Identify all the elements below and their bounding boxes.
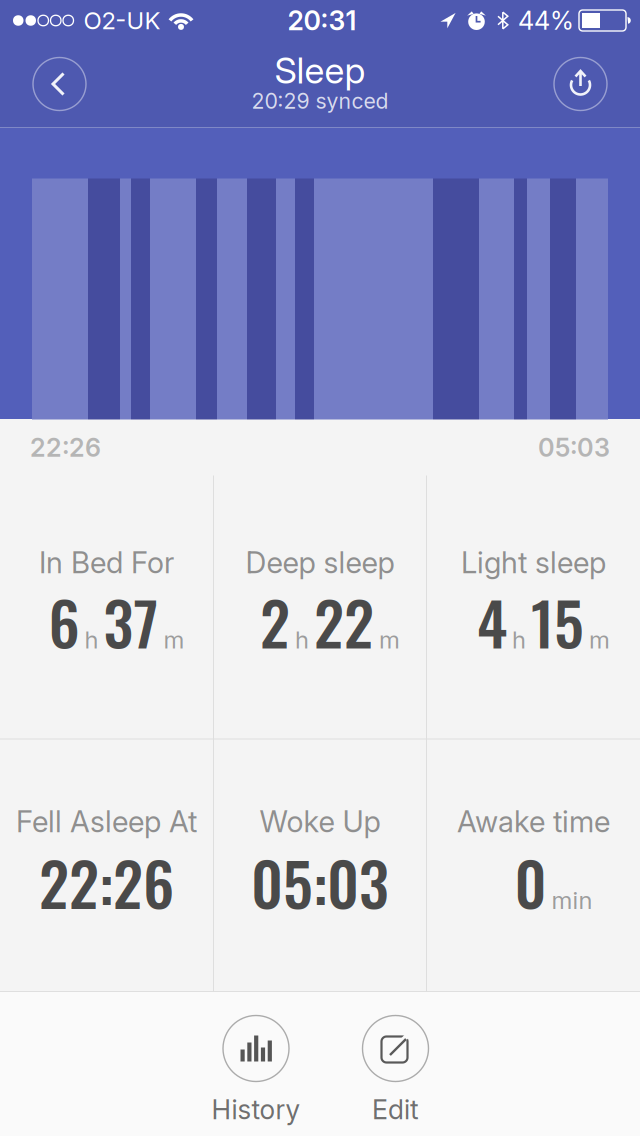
staticText: 44% <box>518 5 574 36</box>
staticText: Woke Up <box>259 804 380 839</box>
staticText: Awake time <box>457 804 610 839</box>
staticText: 05:03 <box>251 837 389 926</box>
staticText: h <box>84 625 98 654</box>
staticText: h <box>295 625 309 654</box>
staticText: m <box>589 625 610 654</box>
staticText: m <box>163 625 184 654</box>
staticText: 22 <box>314 577 374 666</box>
staticText: 22:26 <box>39 837 174 926</box>
staticText: 15 <box>531 577 584 666</box>
staticText: 20:29 synced <box>251 88 388 114</box>
staticText: 37 <box>103 577 158 666</box>
staticText: min <box>551 886 592 915</box>
button[interactable]: Edit <box>362 1015 428 1126</box>
staticText: 20:31 <box>287 4 356 37</box>
button[interactable] <box>554 57 607 110</box>
staticText: Edit <box>372 1093 419 1126</box>
staticText: Light sleep <box>461 545 606 580</box>
staticText: Fell Asleep At <box>16 804 197 839</box>
staticText: O2-UK <box>83 6 160 35</box>
staticText: History <box>211 1093 300 1126</box>
staticText: 22:26 <box>30 432 101 463</box>
staticText: 2 <box>260 577 290 666</box>
staticText: h <box>512 625 526 654</box>
staticText: 6 <box>48 577 79 666</box>
staticText: m <box>379 625 400 654</box>
button[interactable] <box>33 57 86 110</box>
button[interactable]: History <box>211 1015 300 1126</box>
staticText: Sleep <box>274 49 365 92</box>
staticText: 0 <box>514 837 546 926</box>
staticText: 4 <box>477 577 507 666</box>
staticText: Deep sleep <box>245 545 394 580</box>
staticText: In Bed For <box>39 545 174 580</box>
staticText: 05:03 <box>538 432 610 463</box>
